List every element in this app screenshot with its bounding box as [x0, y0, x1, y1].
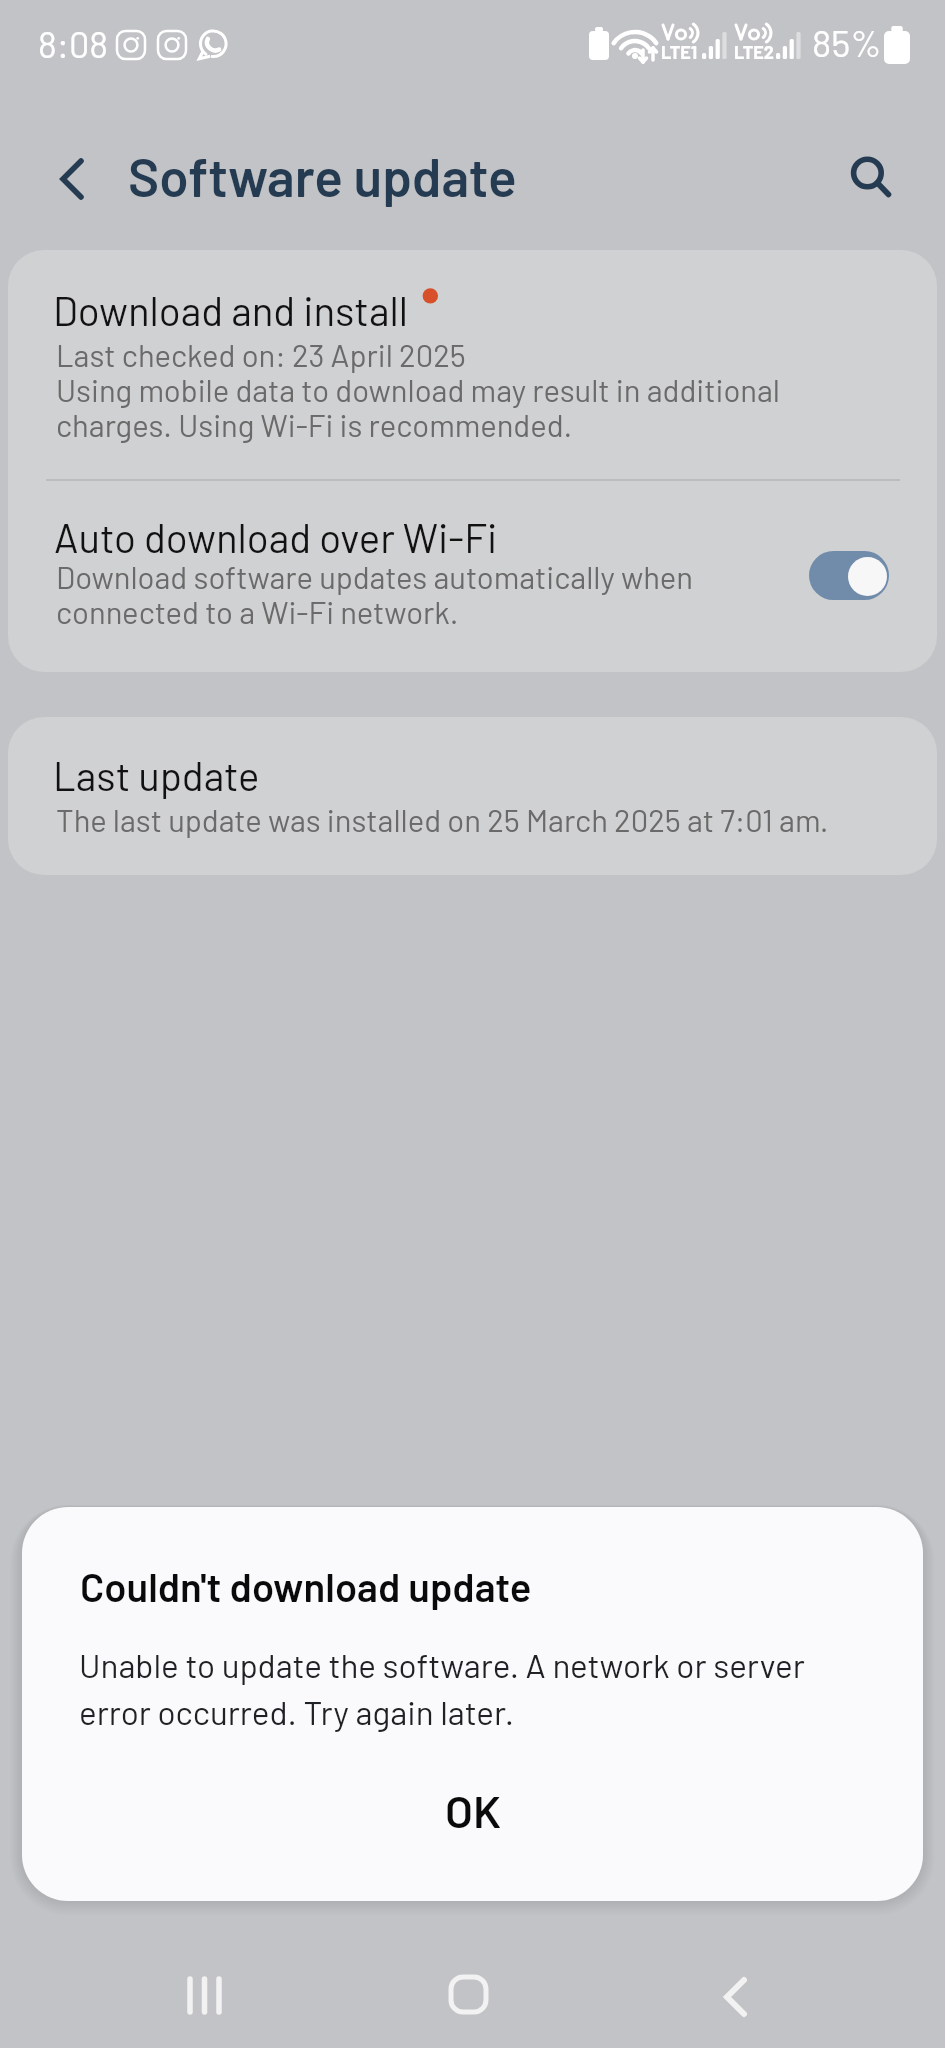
button[interactable]: OK: [378, 1770, 568, 1850]
staticText: 8:08: [38, 22, 109, 65]
staticText: Last checked on: 23 April 2025 Using mob…: [56, 336, 781, 443]
button[interactable]: Download and install: [8, 250, 937, 480]
staticText: Software update: [128, 144, 517, 208]
staticText: Last update: [53, 751, 260, 799]
button[interactable]: Auto download over Wi-Fi toggle: [805, 546, 893, 604]
staticText: Download software updates automatically …: [56, 558, 693, 630]
button[interactable]: Search: [828, 130, 908, 210]
staticText: Unable to update the software. A network…: [79, 1645, 805, 1732]
button[interactable]: Back: [34, 130, 110, 210]
button[interactable]: Back: [686, 1949, 796, 2033]
staticText: LTE2: [734, 41, 774, 63]
staticText: Auto download over Wi-Fi: [54, 513, 498, 561]
staticText: LTE1: [661, 41, 698, 63]
button[interactable]: Recents: [148, 1949, 268, 2033]
staticText: Download and install: [53, 286, 408, 334]
button[interactable]: Auto download over Wi-Fi: [8, 480, 937, 669]
staticText: OK: [445, 1783, 501, 1837]
staticText: The last update was installed on 25 Marc…: [56, 801, 829, 838]
staticText: Couldn't download update: [80, 1562, 532, 1610]
button[interactable]: Home: [414, 1949, 529, 2033]
staticText: 85%: [812, 20, 882, 64]
button[interactable]: Last update: [8, 717, 937, 875]
